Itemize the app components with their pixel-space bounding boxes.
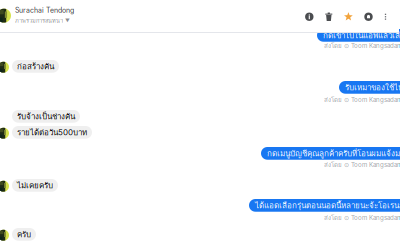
staticText: ส่งโดย ⊙ Toom Kangsadan [324,160,400,170]
staticText: ส่งโดย ⊙ Toom Kangsadan [324,41,400,51]
button[interactable]: Delete conversation [325,12,333,21]
button[interactable]: กดเมนูบัญชีคุณลูกค้าครับที่โอนผมแจ้งมาว่… [261,147,400,160]
button[interactable]: รับจ้างเป็นช่างคัน [12,110,80,123]
staticText: ครับ [17,228,31,241]
button[interactable]: Follow up [344,12,353,21]
button[interactable]: More options [384,12,387,21]
button[interactable]: Mute notifications [364,12,373,21]
staticText: รายได้ต่อวัน500บาท [17,126,87,139]
staticText: Surachai Tendong [15,6,74,14]
button[interactable]: ได้แอดเลือกรุ่นตอนนอดนี้หลายนะจ้ะโอเรนส์… [249,199,400,212]
button[interactable]: ครับ [12,228,36,241]
button[interactable]: ไม่เคยครับ [12,179,58,192]
button[interactable]: รับเหมาของใช้ไหมครับผมสนใจ [339,81,400,94]
button[interactable]: Surachai Tendong [0,6,396,25]
staticText: กดเมนูบัญชีคุณลูกค้าครับที่โอนผมแจ้งมาว่… [267,147,400,160]
button[interactable]: Conversation info [305,12,314,21]
staticText: ▼ [65,18,70,24]
staticText: รับจ้างเป็นช่างคัน [17,110,75,123]
staticText: ไม่เคยครับ [17,179,53,192]
staticText: ส่งโดย ⊙ Toom Kangsadan [324,213,400,223]
staticText: ก่อสร้างคัน [17,60,54,73]
button[interactable]: รายได้ต่อวัน500บาท [12,126,92,139]
button[interactable]: กดเข้าไปในแอพแล้วเลือกเมนูโอนเงินครับผมร… [317,29,400,42]
staticText: รับเหมาของใช้ไหมครับผมสนใจ [345,81,400,94]
staticText: ภาพรวมการสนทนา [15,16,63,25]
staticText: กดเข้าไปในแอพแล้วเลือกเมนูโอนเงินครับผมร… [323,29,400,42]
staticText: ส่งโดย ⊙ Toom Kangsadan [324,95,400,105]
staticText: ได้แอดเลือกรุ่นตอนนอดนี้หลายนะจ้ะโอเรนส์… [255,199,400,212]
button[interactable]: ก่อสร้างคัน [12,60,59,73]
